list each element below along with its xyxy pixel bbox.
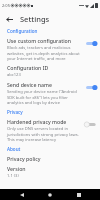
button[interactable]: Switch off [83,119,99,130]
button[interactable]: Hardened privacy mode [0,116,100,143]
button[interactable]: Configuration ID [0,62,100,79]
staticText: Configuration [7,28,38,34]
button[interactable]: Switch on [83,82,99,93]
staticText: Settings [20,14,50,24]
button[interactable]: Home [43,189,57,200]
staticText: Only use DNS servers located in jurisdic… [7,126,82,142]
staticText: abc123 [7,72,21,78]
staticText: 1.1 (3) [7,173,19,179]
button[interactable]: Back [3,13,15,25]
button[interactable]: Recent apps [72,189,86,200]
button[interactable]: Send device name [0,79,100,106]
staticText: Hardened privacy mode [7,118,67,125]
staticText: 2:05 [2,3,10,8]
button[interactable]: Use custom configuration [0,35,100,62]
staticText: Sending your device name ("Android SDK b… [7,89,82,105]
staticText: Privacy [7,109,23,115]
staticText: About [7,146,21,152]
staticText: Block ads, trackers and malicious websit… [7,45,82,61]
button[interactable]: Back [15,189,29,200]
staticText: Privacy policy [7,155,41,162]
button[interactable]: Version [0,163,100,180]
staticText: Use custom configuration [7,37,71,44]
staticText: Version [7,165,26,172]
button[interactable]: Switch on [83,38,99,49]
staticText: Send device name [7,81,52,88]
staticText: Configuration ID [7,64,49,71]
button[interactable]: Privacy policy [0,153,100,163]
